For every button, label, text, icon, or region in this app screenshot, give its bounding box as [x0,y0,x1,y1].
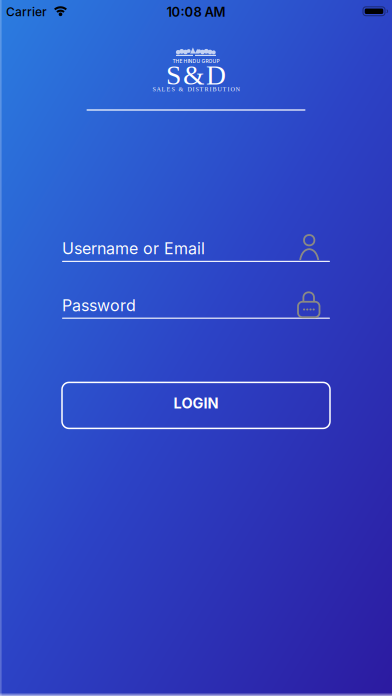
staticText: Username or Email [62,239,205,258]
staticText: Password [62,296,136,315]
staticText: THE HINDU GROUP [172,58,219,64]
button[interactable]: Password [62,287,330,319]
staticText: LOGIN [173,394,218,412]
staticText: Carrier [6,5,47,19]
button[interactable]: Username or Email [62,230,330,262]
staticText: S A L E S & D I S T R I B U T I O N [152,86,239,93]
button[interactable]: LOGIN [62,382,330,428]
staticText: 10:08 AM [166,4,225,20]
staticText: S & D [166,60,226,91]
